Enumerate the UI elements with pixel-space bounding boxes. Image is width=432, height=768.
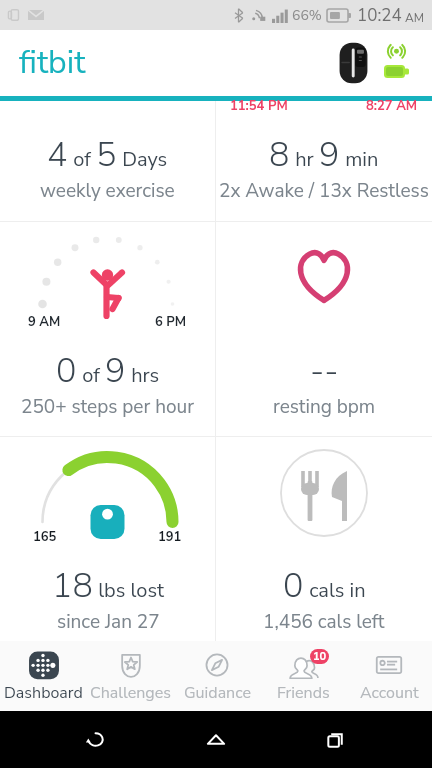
button[interactable]: 11:54 PM xyxy=(216,101,432,221)
staticText: 0 xyxy=(56,348,77,394)
button[interactable]: Tracker xyxy=(339,41,368,85)
staticText: 191 xyxy=(158,528,182,546)
staticText: 6 PM xyxy=(155,313,187,331)
button[interactable]: 165 xyxy=(0,437,215,641)
staticText: 10:24 xyxy=(357,4,402,27)
staticText: 250+ steps per hour xyxy=(21,394,194,420)
staticText: cals in xyxy=(304,577,366,604)
staticText: 9 xyxy=(105,348,126,394)
button[interactable]: Back xyxy=(72,716,120,764)
button[interactable]: 4 xyxy=(0,101,215,221)
button[interactable]: -- xyxy=(216,222,432,436)
staticText: since Jan 27 xyxy=(57,609,160,635)
staticText: 1,456 cals left xyxy=(263,609,385,635)
staticText: 8 xyxy=(269,132,290,178)
staticText: of xyxy=(77,362,105,389)
staticText: resting bpm xyxy=(273,394,376,420)
staticText: 11:54 PM xyxy=(230,97,288,115)
button[interactable]: Guidance xyxy=(174,641,260,711)
staticText: fitbit xyxy=(19,41,86,85)
staticText: 0 xyxy=(283,563,304,609)
staticText: Friends xyxy=(277,682,330,704)
staticText: Challenges xyxy=(90,682,171,704)
staticText: min xyxy=(340,146,379,173)
staticText: hr xyxy=(290,146,319,173)
staticText: Dashboard xyxy=(4,682,83,704)
button[interactable]: Dashboard xyxy=(0,641,87,711)
staticText: 8:27 AM xyxy=(366,97,418,115)
staticText: 2x Awake / 13x Restless xyxy=(219,178,429,204)
staticText: Days xyxy=(117,146,168,173)
staticText: AM xyxy=(402,10,425,26)
button[interactable]: 9 AM xyxy=(0,222,215,436)
staticText: 165 xyxy=(33,528,57,546)
button[interactable]: Challenges xyxy=(87,641,174,711)
staticText: 9 AM xyxy=(28,313,61,331)
staticText: Guidance xyxy=(184,682,251,704)
staticText: 9 xyxy=(319,132,340,178)
staticText: hrs xyxy=(126,362,160,389)
staticText: weekly exercise xyxy=(40,178,175,204)
button[interactable]: Friends xyxy=(260,641,346,711)
staticText: 10 xyxy=(313,649,327,664)
staticText: 4 xyxy=(47,132,68,178)
staticText: 66% xyxy=(292,6,322,25)
button[interactable]: Account xyxy=(346,641,432,711)
button[interactable]: 0 xyxy=(216,437,432,641)
button[interactable]: Recents xyxy=(312,716,360,764)
staticText: of xyxy=(68,146,96,173)
staticText: Account xyxy=(360,682,419,704)
staticText: -- xyxy=(310,348,339,394)
staticText: 5 xyxy=(96,132,117,178)
staticText: 18 xyxy=(52,563,93,609)
button[interactable]: Home xyxy=(192,716,240,764)
staticText: lbs lost xyxy=(93,577,164,604)
